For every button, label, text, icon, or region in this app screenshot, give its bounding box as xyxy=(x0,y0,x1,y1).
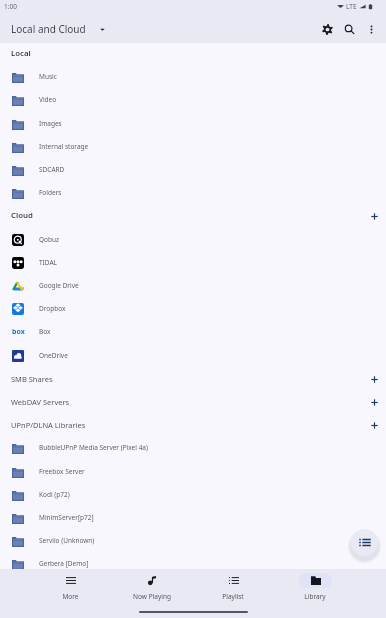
staticText: Google Drive xyxy=(39,281,79,290)
button[interactable]: BubbleUPnP Media Server (Pixel 4a) xyxy=(0,436,386,459)
button[interactable]: Add SMB Shares xyxy=(364,369,384,389)
staticText: Kodi (p72) xyxy=(39,490,70,499)
staticText: MinimServer[p72] xyxy=(39,513,94,522)
button[interactable]: Now Playing xyxy=(111,569,192,601)
button[interactable]: Add UPnP/DLNA Libraries xyxy=(364,415,384,435)
staticText: Internal storage xyxy=(39,142,89,151)
staticText: SMB Shares xyxy=(11,374,53,384)
button[interactable]: Playlist xyxy=(192,569,274,601)
staticText: Images xyxy=(39,119,62,128)
button[interactable]: WebDAV Servers xyxy=(0,390,386,413)
staticText: Qobuz xyxy=(39,235,60,244)
button[interactable]: box xyxy=(0,320,386,343)
button[interactable]: TIDAL xyxy=(0,251,386,274)
button[interactable]: Internal storage xyxy=(0,135,386,158)
staticText: More xyxy=(62,592,79,601)
staticText: Playlist xyxy=(222,592,244,601)
staticText: Folders xyxy=(39,188,62,197)
button[interactable]: Folders xyxy=(0,181,386,204)
staticText: LTE xyxy=(346,2,357,11)
button[interactable]: Settings xyxy=(316,18,338,40)
staticText: TIDAL xyxy=(39,258,57,267)
button[interactable]: Dropbox xyxy=(0,297,386,320)
staticText: Serviio (Unknown) xyxy=(39,536,95,545)
button[interactable]: More options xyxy=(360,18,382,40)
button[interactable]: Gerbera [Demo] xyxy=(0,552,386,575)
staticText: 1:00 xyxy=(4,2,17,11)
button[interactable]: Qobuz xyxy=(0,228,386,251)
staticText: Box xyxy=(39,327,51,336)
button[interactable]: Add Cloud xyxy=(364,206,384,226)
staticText: Music xyxy=(39,72,57,81)
button[interactable]: Freebox Server xyxy=(0,460,386,483)
button[interactable]: MinimServer[p72] xyxy=(0,506,386,529)
staticText: Local xyxy=(11,48,31,59)
button[interactable]: Google Drive xyxy=(0,274,386,297)
button[interactable]: Kodi (p72) xyxy=(0,483,386,506)
button[interactable]: Images xyxy=(0,112,386,135)
staticText: Cloud xyxy=(11,210,33,221)
staticText: Freebox Server xyxy=(39,467,85,476)
button[interactable]: SMB Shares xyxy=(0,367,386,390)
button[interactable]: Search xyxy=(338,18,360,40)
button[interactable]: Library xyxy=(274,569,356,601)
staticText: WebDAV Servers xyxy=(11,397,70,407)
staticText: box xyxy=(12,327,25,337)
button[interactable]: Music xyxy=(0,65,386,88)
button[interactable]: Local and Cloud xyxy=(11,22,106,36)
button[interactable]: OneDrive xyxy=(0,344,386,367)
button[interactable]: Add WebDAV Servers xyxy=(364,392,384,412)
staticText: BubbleUPnP Media Server (Pixel 4a) xyxy=(39,443,148,452)
button[interactable]: Show playlist queue xyxy=(351,529,378,556)
staticText: OneDrive xyxy=(39,351,68,360)
button[interactable]: More xyxy=(30,569,111,601)
staticText: Dropbox xyxy=(39,304,66,313)
staticText: Library xyxy=(304,592,326,601)
button[interactable]: Local xyxy=(0,42,386,65)
staticText: Gerbera [Demo] xyxy=(39,559,89,568)
button[interactable]: SDCARD xyxy=(0,158,386,181)
button[interactable]: UPnP/DLNA Libraries xyxy=(0,413,386,436)
staticText: SDCARD xyxy=(39,165,65,174)
staticText: UPnP/DLNA Libraries xyxy=(11,420,86,430)
staticText: Local and Cloud xyxy=(11,22,86,36)
staticText: Video xyxy=(39,95,57,104)
button[interactable]: Video xyxy=(0,88,386,111)
button[interactable]: Serviio (Unknown) xyxy=(0,529,386,552)
button[interactable]: Cloud xyxy=(0,204,386,227)
staticText: Now Playing xyxy=(133,592,171,601)
